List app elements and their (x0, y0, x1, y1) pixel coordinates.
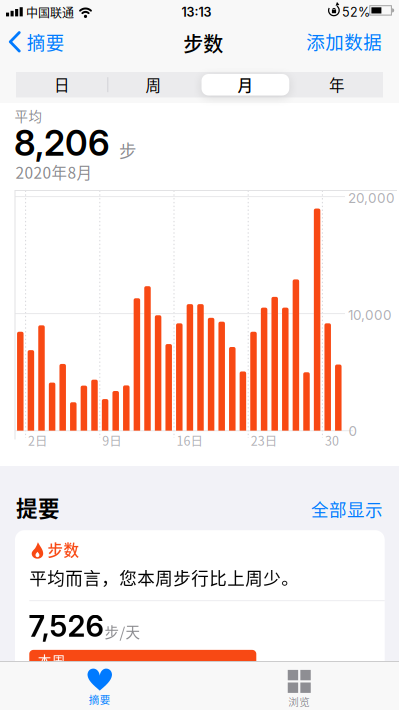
staticText: 2020年8月 (15, 161, 92, 183)
button[interactable]: 浏览 (239, 666, 359, 710)
button[interactable]: 摘要 (40, 665, 160, 710)
staticText: 步 (119, 137, 137, 163)
staticText: 全部显示 (311, 496, 383, 521)
staticText: 20,000 (348, 190, 395, 206)
staticText: 10,000 (348, 307, 392, 323)
staticText: 提要 (16, 491, 60, 523)
staticText: 摘要 (89, 692, 111, 707)
staticText: 23日 (251, 431, 278, 449)
staticText: 52% (342, 5, 370, 20)
staticText: 2日 (28, 431, 48, 449)
staticText: 0 (348, 423, 357, 439)
staticText: 平均而言，您本周步行比上周少。 (29, 564, 299, 590)
staticText: 平均 (14, 106, 42, 125)
staticText: 13:13 (181, 5, 211, 20)
staticText: 7,526 (28, 608, 103, 644)
staticText: 步/天 (104, 621, 140, 642)
staticText: 年 (329, 73, 345, 96)
button[interactable]: 返回摘要 (0, 22, 71, 62)
staticText: 中国联通 (26, 3, 74, 21)
button[interactable]: 月 (200, 72, 290, 97)
staticText: 浏览 (288, 694, 310, 709)
staticText: 月 (237, 73, 253, 96)
staticText: 9日 (102, 431, 122, 449)
staticText: 日 (54, 73, 70, 96)
button[interactable]: 添加数据 (300, 21, 388, 61)
staticText: 步数 (47, 538, 79, 561)
button[interactable]: 日 (17, 72, 107, 97)
staticText: 步数 (183, 28, 223, 57)
button[interactable]: 年 (292, 72, 382, 97)
staticText: 8,206 (14, 122, 110, 164)
staticText: 摘要 (27, 28, 65, 55)
staticText: 本周 (38, 650, 66, 670)
staticText: 添加数据 (306, 28, 382, 55)
button[interactable]: 全部显示 (311, 496, 383, 521)
staticText: 周 (146, 73, 162, 96)
staticText: 16日 (176, 431, 203, 449)
button[interactable]: 周 (109, 72, 199, 97)
staticText: 30 (325, 431, 339, 449)
button[interactable]: 步数 (15, 530, 385, 690)
